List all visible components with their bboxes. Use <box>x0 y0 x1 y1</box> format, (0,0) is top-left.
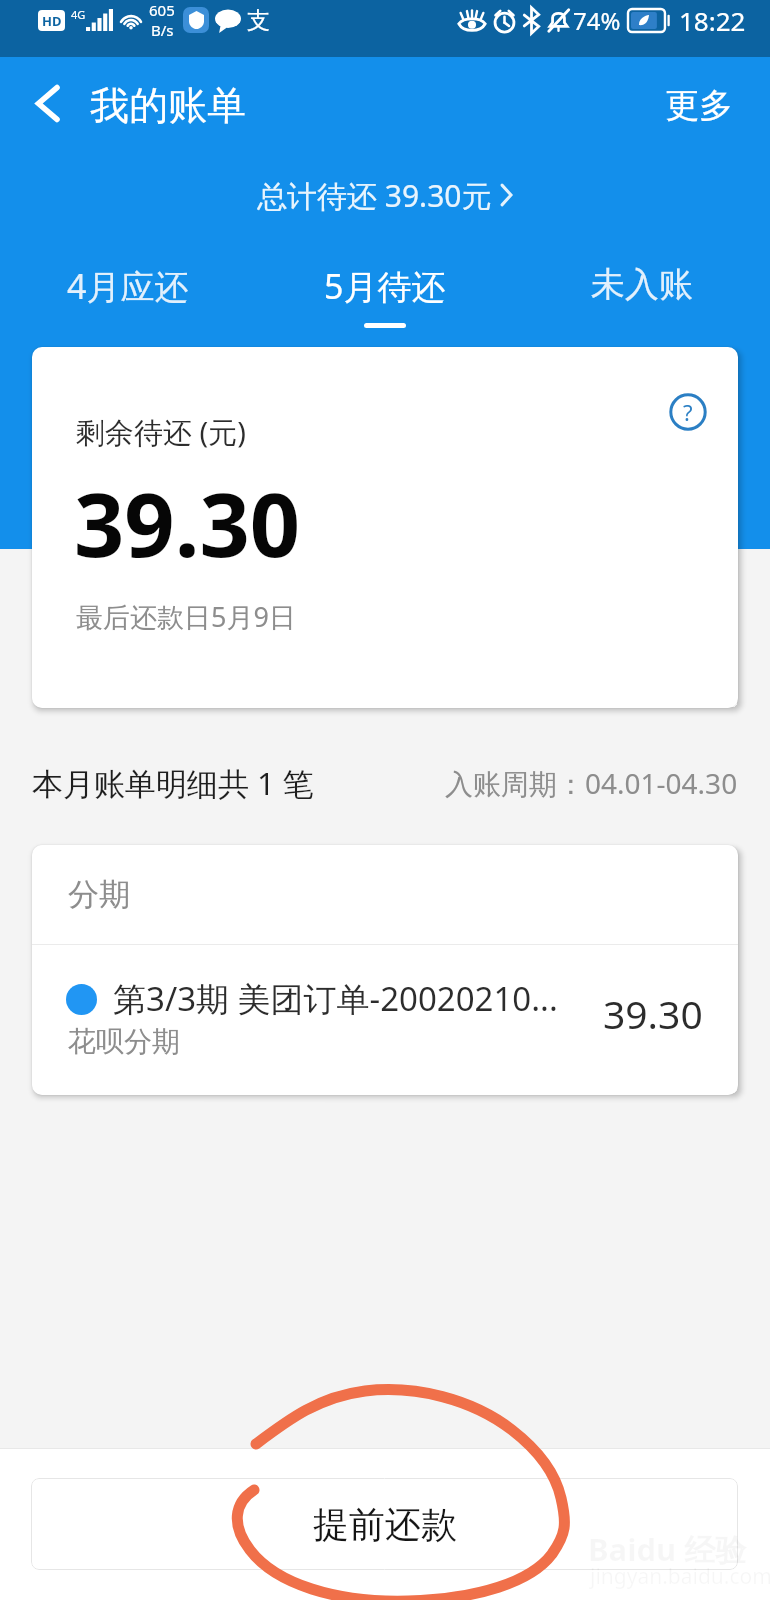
staticText: 74% <box>573 4 621 37</box>
staticText: 18:22 <box>679 3 746 38</box>
staticText: 605 <box>149 0 175 20</box>
staticText: 入账周期：04.01-04.30 <box>445 764 738 802</box>
staticText: 4G <box>71 7 86 22</box>
button[interactable]: 4月应还 <box>0 255 256 331</box>
staticText: 花呗分期 <box>68 1024 180 1059</box>
staticText: 总计待还 39.30元 <box>257 175 492 216</box>
staticText: 5月待还 <box>324 263 446 309</box>
staticText: 最后还款日5月9日 <box>76 598 296 635</box>
staticText: 39.30 <box>603 987 703 1040</box>
staticText: B/s <box>151 20 174 40</box>
staticText: Baidu 经验 <box>588 1528 747 1570</box>
button[interactable]: 未入账 <box>513 255 770 328</box>
button[interactable]: 提前还款 <box>31 1478 738 1570</box>
staticText: 提前还款 <box>313 1502 457 1547</box>
staticText: 更多 <box>665 84 733 127</box>
staticText: 分期 <box>68 875 130 914</box>
staticText: 第3/3期 美团订单-20020210... <box>113 976 583 1021</box>
staticText: 剩余待还 (元) <box>76 412 246 452</box>
staticText: 未入账 <box>591 263 693 306</box>
button[interactable]: 第3/3期 美团订单-20020210... <box>32 945 738 1095</box>
button[interactable]: 更多 <box>628 70 770 141</box>
staticText: 我的账单 <box>90 81 246 130</box>
staticText: 4月应还 <box>67 263 189 309</box>
staticText: HD <box>42 12 62 30</box>
button[interactable]: Help <box>667 391 709 433</box>
button[interactable]: 总计待还 39.30元 <box>0 167 770 223</box>
staticText: 本月账单明细共 1 笔 <box>32 762 314 804</box>
button[interactable]: Back <box>14 70 80 136</box>
staticText: 支 <box>247 6 270 35</box>
button[interactable]: 5月待还 <box>256 255 513 336</box>
staticText: jingyan.baidu.com <box>590 1562 770 1591</box>
staticText: ? <box>683 397 693 427</box>
staticText: 39.30 <box>74 463 301 583</box>
